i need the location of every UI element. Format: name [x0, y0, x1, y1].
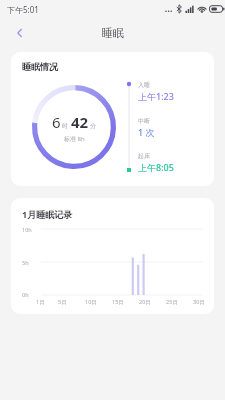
- staticText: 5日: [58, 298, 67, 306]
- staticText: 10日: [85, 298, 97, 306]
- staticText: 分: [90, 122, 96, 130]
- staticText: 时: [62, 122, 68, 130]
- staticText: 入睡: [138, 81, 150, 89]
- staticText: 起床: [138, 152, 150, 160]
- button[interactable]: Back: [6, 19, 34, 47]
- staticText: 15日: [112, 298, 124, 306]
- staticText: 30日: [193, 298, 205, 306]
- staticText: 中断: [138, 117, 150, 125]
- button[interactable]: 1月睡眠记录: [11, 198, 214, 314]
- button[interactable]: 中断: [138, 117, 155, 138]
- staticText: 0h: [22, 291, 29, 298]
- staticText: 1日: [36, 298, 45, 306]
- button[interactable]: 睡眠情况: [11, 52, 214, 186]
- staticText: 睡眠: [102, 26, 124, 40]
- staticText: 42: [71, 112, 89, 132]
- button[interactable]: 起床: [138, 152, 174, 173]
- staticText: 6: [52, 112, 61, 132]
- staticText: 标准 8h: [64, 135, 85, 143]
- staticText: 下午5:01: [7, 4, 39, 15]
- staticText: 1月睡眠记录: [22, 208, 73, 220]
- staticText: 1 次: [138, 126, 155, 138]
- staticText: 上午1:23: [138, 90, 174, 102]
- staticText: 20日: [139, 298, 151, 306]
- button[interactable]: 入睡: [138, 81, 174, 102]
- staticText: 5h: [22, 259, 29, 266]
- staticText: 睡眠情况: [22, 61, 58, 72]
- staticText: 10h: [22, 226, 32, 233]
- staticText: 上午8:05: [138, 161, 174, 173]
- staticText: 25日: [166, 298, 178, 306]
